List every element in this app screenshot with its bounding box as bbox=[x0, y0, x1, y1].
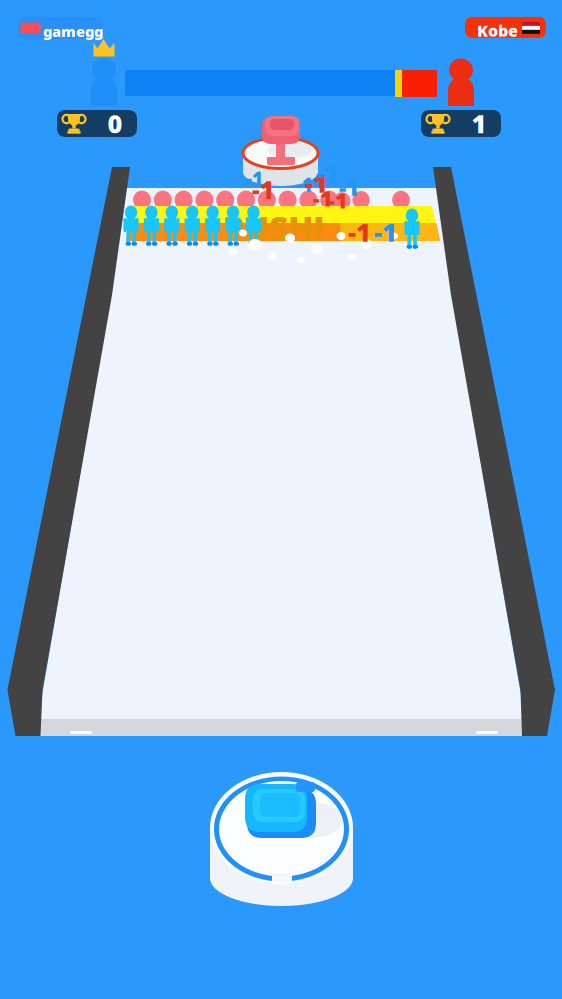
button[interactable]: 0 bbox=[57, 110, 137, 137]
staticText: -1 bbox=[246, 166, 263, 191]
staticText: -1 bbox=[348, 215, 371, 249]
staticText: gamegg bbox=[43, 21, 103, 41]
button[interactable]: Kobe bbox=[465, 17, 546, 38]
staticText: 1 bbox=[471, 107, 486, 140]
staticText: Kobe bbox=[477, 20, 518, 41]
button[interactable]: gamegg bbox=[18, 17, 103, 39]
staticText: -1 bbox=[316, 156, 339, 190]
staticText: -1 bbox=[252, 174, 274, 206]
staticText: -1 bbox=[313, 184, 333, 212]
staticText: -1 bbox=[339, 172, 359, 202]
staticText: -1 bbox=[305, 166, 328, 200]
staticText: -1 bbox=[296, 172, 313, 197]
staticText: -1 bbox=[328, 186, 348, 214]
staticText: 0 bbox=[107, 107, 122, 140]
staticText: -1 bbox=[374, 215, 397, 249]
button[interactable]: 1 bbox=[421, 110, 501, 137]
staticText: PUSH! bbox=[223, 206, 324, 250]
button[interactable]: Joystick bbox=[0, 0, 562, 999]
